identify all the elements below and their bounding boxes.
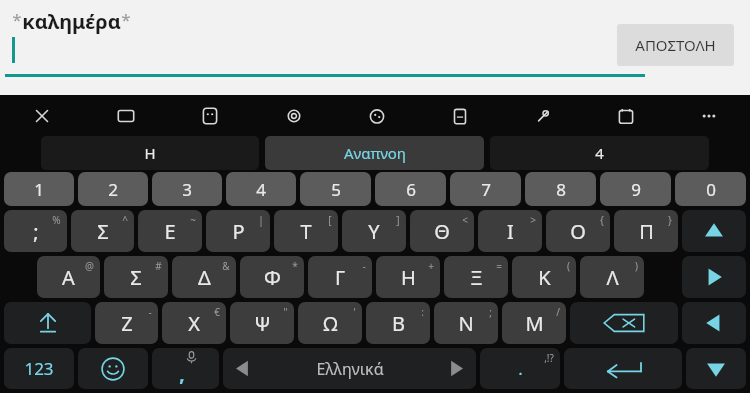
button[interactable]: Π [614, 210, 678, 252]
staticText: : [421, 305, 424, 319]
button[interactable]: Ο [546, 210, 610, 252]
button[interactable]: Λ [580, 256, 644, 298]
button[interactable]: Ψ [230, 302, 294, 344]
staticText: Η [401, 264, 416, 291]
button[interactable]: 6 [375, 172, 446, 206]
button[interactable]: 2 [78, 172, 148, 206]
button[interactable]: Clipboard [418, 95, 501, 136]
button[interactable]: Α [37, 256, 100, 298]
staticText: ^ [122, 213, 128, 227]
button[interactable]: Down [686, 348, 746, 389]
button[interactable]: Χ [162, 302, 226, 344]
button[interactable]: Calendar [584, 95, 667, 136]
staticText: Ρ [232, 218, 245, 245]
button[interactable]: , [152, 348, 219, 389]
staticText: " [283, 305, 288, 319]
staticText: [ [328, 213, 332, 227]
button[interactable]: More [667, 95, 750, 136]
button[interactable]: Backspace [570, 302, 678, 344]
button[interactable]: Settings [252, 95, 335, 136]
button[interactable]: Close [0, 95, 84, 136]
button[interactable]: 9 [600, 172, 671, 206]
staticText: ) [635, 259, 638, 273]
button[interactable]: Ζ [95, 302, 158, 344]
button[interactable]: 3 [152, 172, 222, 206]
staticText: 4 [595, 143, 604, 163]
button[interactable]: Κ [512, 256, 576, 298]
button[interactable]: Η [376, 256, 440, 298]
button[interactable]: Σ [71, 210, 134, 252]
button[interactable]: Ελληνικά [223, 348, 476, 389]
button[interactable]: Μ [502, 302, 566, 344]
button[interactable]: Φ [240, 256, 304, 298]
button[interactable]: 0 [675, 172, 746, 206]
button[interactable]: Ρ [206, 210, 270, 252]
staticText: * [121, 8, 131, 31]
button[interactable]: Τ [274, 210, 338, 252]
staticText: @ [85, 259, 94, 273]
staticText: 8 [556, 178, 566, 201]
button[interactable]: Emoji [78, 348, 148, 389]
button[interactable]: 8 [525, 172, 596, 206]
button[interactable]: Σ [104, 256, 168, 298]
staticText: ( [567, 259, 570, 273]
staticText: Ξ [470, 264, 483, 291]
button[interactable]: Δ [172, 256, 236, 298]
button[interactable]: Stickers [168, 95, 252, 136]
button[interactable]: . [480, 348, 560, 389]
staticText: 123 [24, 357, 54, 380]
staticText: Λ [606, 264, 619, 291]
button[interactable]: Γ [308, 256, 372, 298]
button[interactable]: 7 [450, 172, 521, 206]
button[interactable]: Themes [335, 95, 418, 136]
button[interactable]: Υ [342, 210, 406, 252]
button[interactable]: Ω [298, 302, 362, 344]
staticText: 6 [406, 178, 416, 201]
button[interactable]: ΑΠΟΣΤΟΛΗ [617, 24, 734, 66]
staticText: 4 [256, 178, 266, 201]
staticText: Ο [570, 218, 586, 245]
button[interactable]: 4 [226, 172, 296, 206]
staticText: * [292, 259, 298, 273]
staticText: Κ [538, 264, 551, 291]
button[interactable]: 5 [300, 172, 371, 206]
staticText: * [12, 8, 22, 31]
button[interactable]: Left [682, 302, 746, 344]
staticText: Η [144, 143, 156, 163]
button[interactable]: Β [366, 302, 430, 344]
staticText: Σ [130, 264, 142, 291]
staticText: - [362, 259, 366, 273]
staticText: 3 [182, 178, 192, 201]
staticText: } [668, 213, 672, 227]
button[interactable]: ; [4, 210, 67, 252]
button[interactable]: Pin [501, 95, 584, 136]
button[interactable]: Αναπνοη [265, 136, 484, 170]
staticText: € [214, 305, 220, 319]
button[interactable]: Ε [138, 210, 202, 252]
button[interactable]: GIF [84, 95, 168, 136]
staticText: Δ [198, 264, 211, 291]
staticText: + [428, 259, 434, 273]
staticText: Χ [188, 310, 200, 337]
staticText: 0 [706, 178, 716, 201]
button[interactable]: Ξ [444, 256, 508, 298]
button[interactable]: Up [682, 210, 746, 252]
staticText: ~ [190, 213, 196, 227]
button[interactable]: Η [41, 136, 259, 170]
button[interactable]: Right [682, 256, 746, 298]
staticText: Αναπνοη [344, 143, 406, 163]
button[interactable]: Shift [4, 302, 91, 344]
staticText: . [518, 357, 523, 380]
button[interactable]: 1 [4, 172, 74, 206]
button[interactable]: 123 [4, 348, 74, 389]
staticText: ; [33, 218, 39, 245]
button[interactable]: Ν [434, 302, 498, 344]
button[interactable]: Ι [478, 210, 542, 252]
button[interactable]: Enter [564, 348, 682, 389]
button[interactable]: Θ [410, 210, 474, 252]
staticText: Ελληνικά [316, 358, 384, 380]
staticText: Ζ [121, 310, 133, 337]
staticText: 2 [108, 178, 118, 201]
button[interactable]: 4 [490, 136, 709, 170]
staticText: # [155, 259, 162, 273]
